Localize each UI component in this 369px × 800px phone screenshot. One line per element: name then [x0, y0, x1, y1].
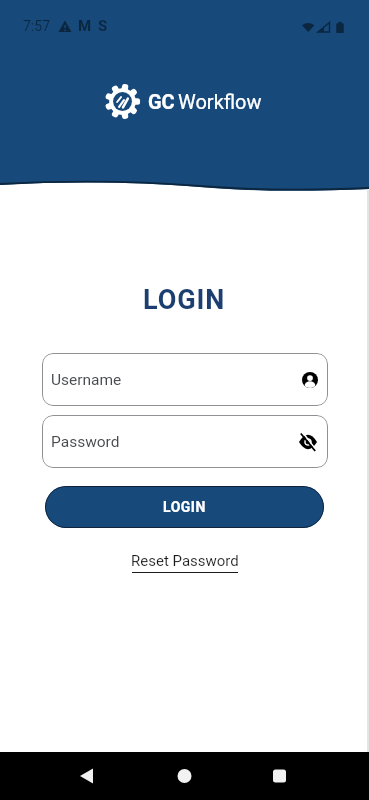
button[interactable]: LOGIN	[45, 486, 324, 528]
staticText: 7:57	[23, 18, 50, 34]
staticText: M	[78, 17, 92, 35]
staticText: LOGIN	[163, 499, 206, 515]
staticText: Username	[51, 371, 122, 389]
staticText: S	[98, 17, 108, 35]
staticText: Password	[51, 433, 120, 451]
staticText: Workflow	[178, 90, 262, 113]
staticText: Reset Password	[131, 552, 239, 570]
button[interactable]: Username	[42, 353, 328, 406]
staticText: GC	[148, 90, 175, 113]
staticText: LOGIN	[143, 284, 226, 316]
button[interactable]: Password	[42, 415, 328, 468]
button[interactable]: Reset Password	[131, 552, 239, 573]
